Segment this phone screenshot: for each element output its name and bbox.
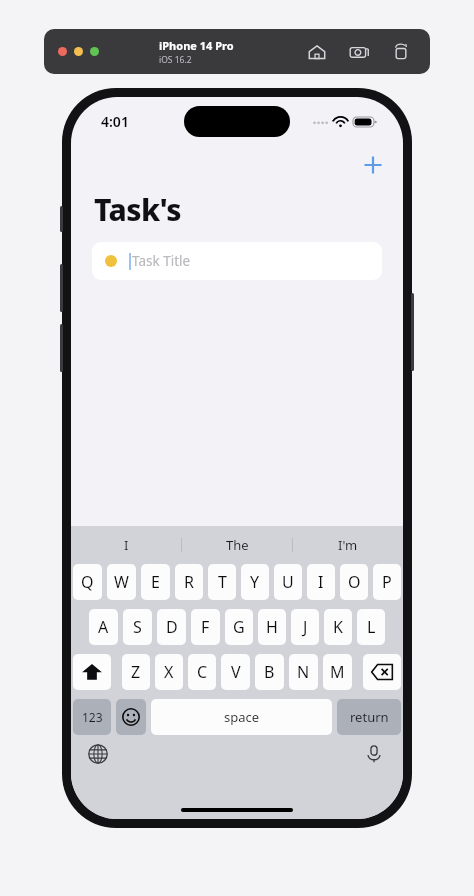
staticText: H bbox=[266, 616, 278, 638]
button[interactable]: G bbox=[225, 609, 253, 645]
staticText: Task's bbox=[94, 189, 181, 230]
button[interactable]: Change keyboard bbox=[85, 741, 111, 767]
button[interactable]: 123 bbox=[73, 699, 111, 735]
button[interactable]: A bbox=[89, 609, 118, 645]
button[interactable]: I'm bbox=[293, 526, 403, 564]
button[interactable]: Z bbox=[122, 654, 150, 690]
button[interactable] bbox=[58, 47, 67, 56]
staticText: Z bbox=[131, 661, 141, 683]
staticText: Y bbox=[250, 571, 260, 593]
staticText: I bbox=[318, 571, 324, 593]
staticText: The bbox=[226, 536, 249, 554]
staticText: space bbox=[224, 708, 260, 726]
button[interactable]: Q bbox=[73, 564, 102, 600]
button[interactable]: P bbox=[373, 564, 401, 600]
button[interactable]: E bbox=[141, 564, 170, 600]
button[interactable]: Add task bbox=[357, 149, 389, 181]
button[interactable]: U bbox=[274, 564, 302, 600]
button[interactable]: T bbox=[208, 564, 236, 600]
staticText: Q bbox=[81, 571, 94, 593]
button[interactable]: R bbox=[175, 564, 203, 600]
button[interactable]: Y bbox=[241, 564, 269, 600]
button[interactable]: The bbox=[182, 526, 292, 564]
button[interactable]: B bbox=[255, 654, 284, 690]
staticText: iOS 16.2 bbox=[159, 54, 192, 66]
staticText: return bbox=[350, 708, 389, 726]
staticText: P bbox=[382, 571, 392, 593]
button[interactable]: X bbox=[155, 654, 183, 690]
button[interactable]: F bbox=[191, 609, 220, 645]
button[interactable]: return bbox=[337, 699, 401, 735]
button[interactable]: Task Title bbox=[92, 242, 382, 280]
staticText: M bbox=[330, 661, 345, 683]
staticText: 4:01 bbox=[101, 112, 129, 131]
button[interactable]: Shift bbox=[73, 654, 111, 690]
button[interactable]: Rotate bbox=[390, 41, 412, 63]
staticText: J bbox=[303, 616, 308, 638]
staticText: X bbox=[164, 661, 174, 683]
staticText: I bbox=[124, 536, 129, 554]
staticText: Task Title bbox=[132, 252, 191, 270]
button[interactable]: L bbox=[357, 609, 385, 645]
button[interactable] bbox=[74, 47, 83, 56]
button[interactable]: I bbox=[71, 526, 181, 564]
staticText: B bbox=[264, 661, 275, 683]
staticText: G bbox=[233, 616, 245, 638]
button[interactable]: V bbox=[221, 654, 250, 690]
button[interactable]: I bbox=[307, 564, 335, 600]
button[interactable]: S bbox=[123, 609, 152, 645]
button[interactable]: N bbox=[289, 654, 318, 690]
button[interactable]: Dictate bbox=[361, 741, 387, 767]
button[interactable]: Home bbox=[306, 41, 328, 63]
staticText: E bbox=[151, 571, 160, 593]
button[interactable]: O bbox=[340, 564, 368, 600]
staticText: W bbox=[114, 571, 129, 593]
staticText: N bbox=[297, 661, 310, 683]
staticText: F bbox=[201, 616, 210, 638]
button[interactable]: W bbox=[107, 564, 136, 600]
button[interactable]: D bbox=[157, 609, 186, 645]
button[interactable]: H bbox=[258, 609, 286, 645]
staticText: D bbox=[166, 616, 178, 638]
button[interactable]: K bbox=[324, 609, 352, 645]
button[interactable] bbox=[90, 47, 99, 56]
staticText: A bbox=[98, 616, 109, 638]
staticText: K bbox=[333, 616, 343, 638]
button[interactable]: J bbox=[291, 609, 319, 645]
staticText: O bbox=[348, 571, 361, 593]
staticText: U bbox=[282, 571, 294, 593]
staticText: I'm bbox=[338, 536, 358, 554]
button[interactable]: M bbox=[323, 654, 352, 690]
staticText: iPhone 14 Pro bbox=[159, 38, 234, 53]
staticText: R bbox=[184, 571, 194, 593]
staticText: L bbox=[367, 616, 376, 638]
button[interactable]: Emoji bbox=[116, 699, 146, 735]
button[interactable]: space bbox=[151, 699, 332, 735]
staticText: C bbox=[197, 661, 208, 683]
staticText: V bbox=[231, 661, 241, 683]
staticText: S bbox=[133, 616, 142, 638]
staticText: 123 bbox=[82, 709, 103, 725]
button[interactable]: C bbox=[188, 654, 216, 690]
button[interactable]: Screenshot bbox=[348, 41, 370, 63]
button[interactable]: Backspace bbox=[363, 654, 401, 690]
staticText: T bbox=[218, 571, 227, 593]
